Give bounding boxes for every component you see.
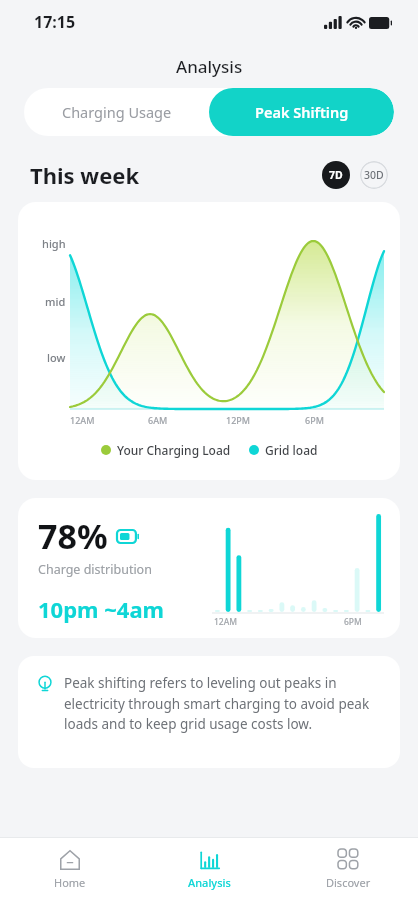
other: Discover: [338, 849, 360, 871]
staticText: Discover: [326, 875, 371, 890]
staticText: low: [47, 350, 66, 365]
button[interactable]: Home: [0, 838, 140, 900]
staticText: 7D: [329, 168, 343, 182]
staticText: Analysis: [188, 875, 231, 890]
button[interactable]: 7D: [322, 161, 350, 189]
button[interactable]: Peak Shifting: [209, 88, 394, 136]
staticText: Peak Shifting: [255, 102, 349, 122]
button[interactable]: Discover: [279, 838, 418, 900]
staticText: 12AM: [70, 414, 95, 426]
staticText: high: [42, 236, 66, 251]
staticText: 17:15: [34, 11, 76, 33]
staticText: Grid load: [265, 442, 318, 458]
staticText: 78%: [38, 513, 108, 559]
staticText: 6PM: [305, 414, 324, 426]
staticText: Home: [54, 875, 86, 890]
staticText: Charge distribution: [38, 561, 152, 578]
staticText: Peak shifting refers to leveling out pea…: [64, 674, 384, 733]
button[interactable]: 30D: [360, 161, 388, 189]
staticText: Your Charging Load: [117, 442, 231, 458]
staticText: 30D: [364, 168, 384, 182]
staticText: This week: [30, 160, 140, 190]
button[interactable]: Charging Usage: [24, 88, 209, 136]
other: Analysis: [199, 849, 221, 871]
button[interactable]: Analysis: [140, 838, 279, 900]
staticText: 12AM: [214, 616, 238, 628]
staticText: 10pm ~4am: [38, 594, 165, 624]
staticText: Analysis: [176, 55, 243, 78]
staticText: 12PM: [226, 414, 251, 426]
staticText: Charging Usage: [62, 102, 172, 122]
staticText: 6AM: [148, 414, 168, 426]
staticText: 6PM: [344, 616, 362, 628]
other: Home: [59, 849, 81, 871]
staticText: mid: [45, 294, 66, 309]
